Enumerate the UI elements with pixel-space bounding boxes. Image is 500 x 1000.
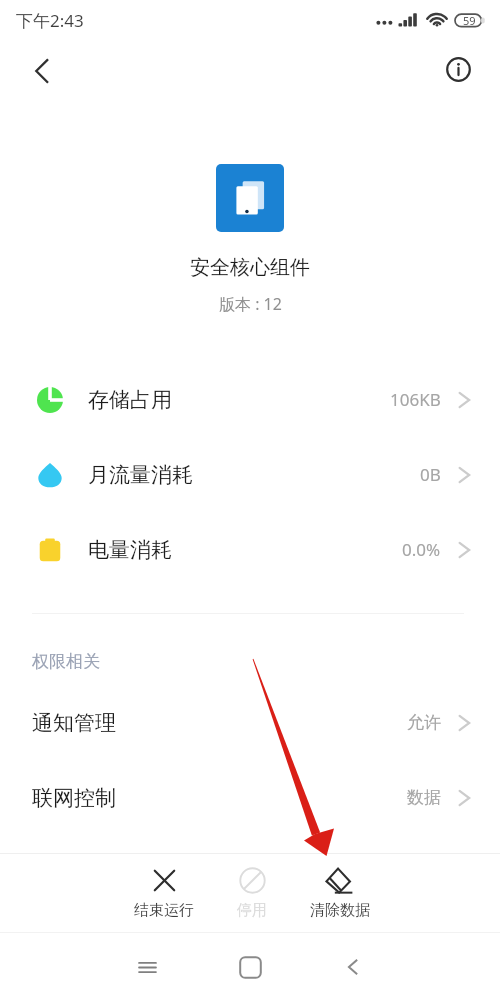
button[interactable]: 电量消耗 — [0, 512, 500, 587]
staticText: 0.0% — [402, 538, 441, 561]
button[interactable]: Back — [21, 50, 63, 92]
staticText: 月流量消耗 — [88, 462, 193, 488]
button[interactable]: 月流量消耗 — [0, 437, 500, 512]
staticText: 0B — [420, 463, 441, 486]
button[interactable]: 停用 — [217, 863, 287, 924]
staticText: 允许 — [407, 712, 441, 733]
button[interactable]: Back — [329, 944, 375, 990]
staticText: 清除数据 — [310, 901, 370, 920]
button[interactable]: Recent apps — [124, 944, 170, 990]
staticText: 下午2:43 — [16, 9, 84, 32]
staticText: 106KB — [390, 388, 441, 411]
button[interactable]: 通知管理 — [0, 685, 500, 760]
staticText: 数据 — [407, 787, 441, 808]
staticText: 停用 — [237, 901, 267, 920]
button[interactable]: 存储占用 — [0, 362, 500, 437]
staticText: 电量消耗 — [88, 537, 172, 563]
staticText: 权限相关 — [32, 651, 100, 672]
button[interactable]: 清除数据 — [305, 863, 375, 924]
staticText: 结束运行 — [134, 901, 194, 920]
staticText: 存储占用 — [88, 387, 172, 413]
button[interactable]: 联网控制 — [0, 760, 500, 835]
button[interactable]: 结束运行 — [129, 863, 199, 924]
button[interactable]: About app info — [438, 49, 478, 89]
staticText: 59 — [463, 13, 476, 28]
staticText: 通知管理 — [32, 710, 116, 736]
staticText: 联网控制 — [32, 785, 116, 811]
button[interactable]: Home — [227, 944, 273, 990]
staticText: 版本 : 12 — [219, 293, 282, 315]
staticText: 安全核心组件 — [190, 255, 310, 280]
